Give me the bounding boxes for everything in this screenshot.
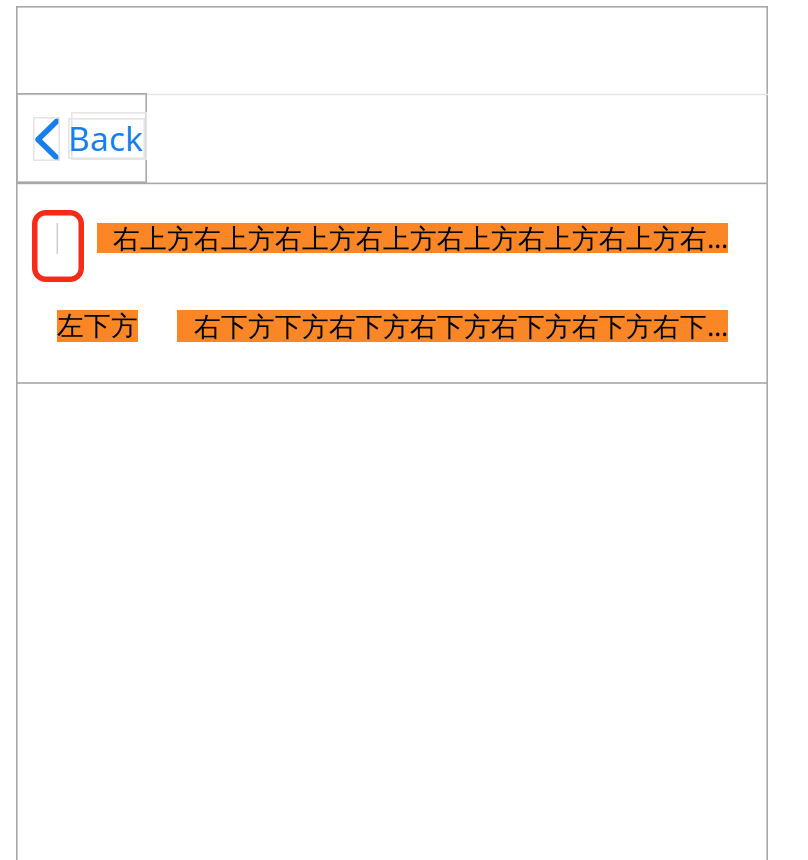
- staticText: 左下方: [57, 310, 138, 342]
- staticText: Back: [68, 116, 143, 160]
- button[interactable]: Back: [16, 93, 147, 183]
- staticText: 右上方右上方右上方右上方右上方右上方右上方右…: [113, 220, 728, 256]
- staticText: 右下方下方右下方右下方右下方右下方右下…: [194, 308, 728, 344]
